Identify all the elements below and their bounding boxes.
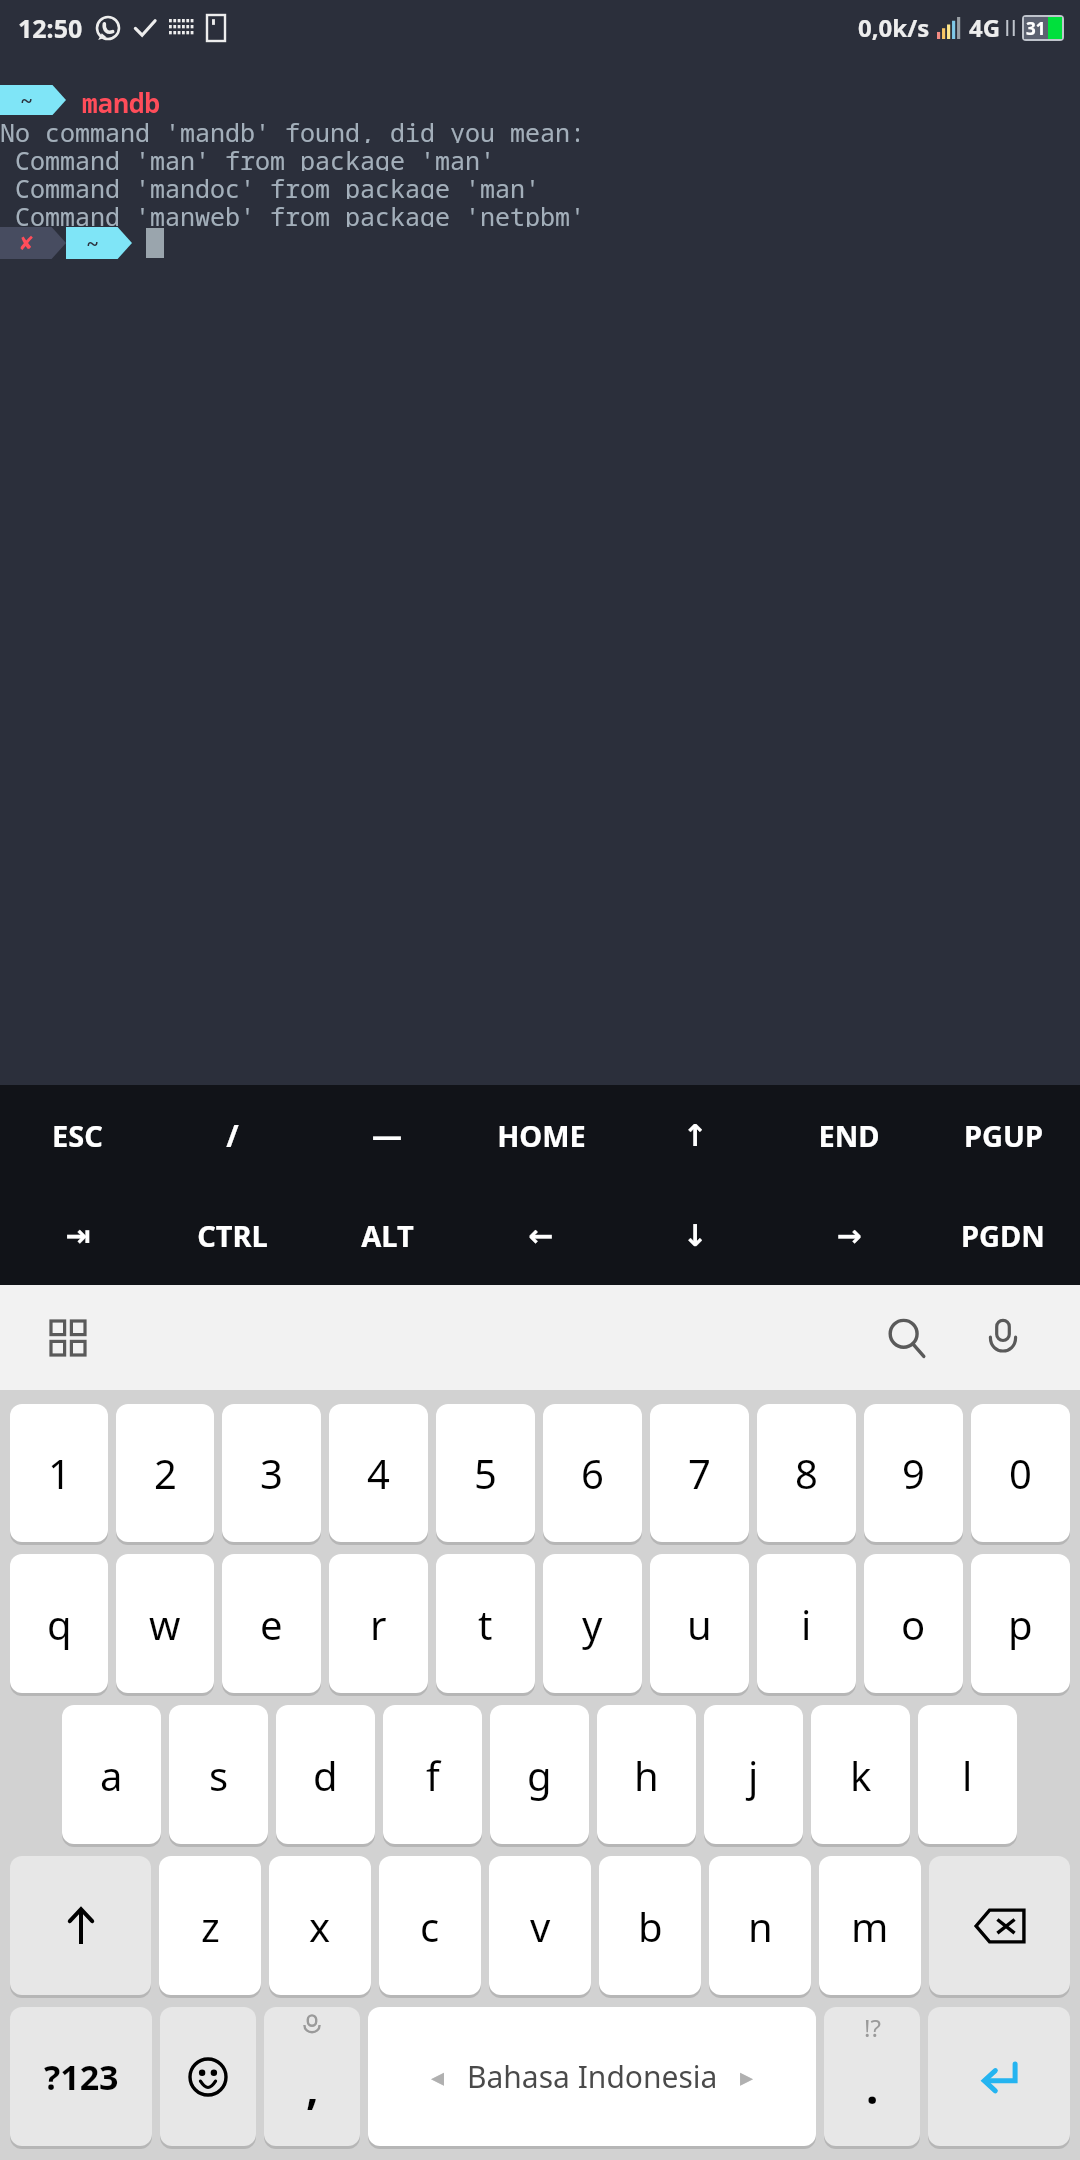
button[interactable]: Key → bbox=[772, 1185, 926, 1285]
button[interactable]: del bbox=[929, 1856, 1070, 1995]
button[interactable]: v bbox=[489, 1856, 591, 1995]
staticText: ~ bbox=[20, 85, 34, 115]
staticText: 2 bbox=[154, 1446, 177, 1500]
button[interactable]: Key ⇥ bbox=[0, 1185, 155, 1285]
button[interactable]: 3 bbox=[222, 1404, 321, 1542]
button[interactable]: 9 bbox=[864, 1404, 963, 1542]
button[interactable]: enter bbox=[928, 2007, 1070, 2146]
staticText: s bbox=[209, 1748, 229, 1802]
button[interactable]: j bbox=[704, 1705, 803, 1844]
staticText: a bbox=[100, 1748, 123, 1802]
staticText: 8 bbox=[795, 1446, 818, 1500]
button[interactable]: h bbox=[597, 1705, 696, 1844]
staticText: 7 bbox=[688, 1446, 711, 1500]
staticText: HOME bbox=[497, 1116, 586, 1155]
button[interactable]: HOME bbox=[464, 1085, 618, 1185]
button[interactable]: PGDN bbox=[926, 1185, 1080, 1285]
button[interactable]: o bbox=[864, 1554, 963, 1693]
staticText: 9 bbox=[902, 1446, 925, 1500]
staticText: h bbox=[634, 1748, 659, 1802]
button[interactable]: END bbox=[772, 1085, 926, 1185]
staticText: END bbox=[818, 1116, 880, 1155]
button[interactable]: ALT bbox=[310, 1185, 464, 1285]
staticText: ← bbox=[528, 1218, 554, 1253]
button[interactable]: PGUP bbox=[926, 1085, 1080, 1185]
button[interactable]: 6 bbox=[543, 1404, 642, 1542]
staticText: k bbox=[850, 1748, 872, 1802]
button[interactable]: l bbox=[918, 1705, 1017, 1844]
button[interactable]: emoji bbox=[160, 2007, 256, 2146]
button[interactable]: Key / bbox=[155, 1085, 310, 1185]
button[interactable]: m bbox=[819, 1856, 921, 1995]
button[interactable]: a bbox=[62, 1705, 161, 1844]
button[interactable]: Key ↓ bbox=[618, 1185, 772, 1285]
staticText: r bbox=[370, 1597, 387, 1651]
button[interactable]: q bbox=[10, 1554, 108, 1693]
button[interactable]: 1 bbox=[10, 1404, 108, 1542]
staticText: ✘ bbox=[20, 230, 34, 256]
button[interactable]: CTRL bbox=[155, 1185, 310, 1285]
button[interactable]: Key ↑ bbox=[618, 1085, 772, 1185]
button[interactable]: ?123 bbox=[10, 2007, 152, 2146]
button[interactable]: i bbox=[757, 1554, 856, 1693]
button[interactable]: g bbox=[490, 1705, 589, 1844]
staticText: e bbox=[260, 1597, 283, 1651]
button[interactable]: Search bbox=[872, 1303, 942, 1373]
button[interactable]: ◂ bbox=[368, 2007, 816, 2146]
staticText: ~ bbox=[86, 228, 100, 258]
staticText: i bbox=[801, 1597, 812, 1651]
button[interactable]: c bbox=[379, 1856, 481, 1995]
button[interactable]: p bbox=[971, 1554, 1070, 1693]
button[interactable]: period bbox=[824, 2007, 920, 2146]
button[interactable]: shift bbox=[10, 1856, 151, 1995]
button[interactable]: x bbox=[269, 1856, 371, 1995]
staticText: 6 bbox=[581, 1446, 604, 1500]
staticText: !? bbox=[864, 2011, 881, 2044]
staticText: 0 bbox=[1009, 1446, 1032, 1500]
staticText: No command 'mandb' found, did you mean: bbox=[0, 115, 586, 143]
button[interactable]: y bbox=[543, 1554, 642, 1693]
button[interactable]: s bbox=[169, 1705, 268, 1844]
button[interactable]: t bbox=[436, 1554, 535, 1693]
button[interactable]: f bbox=[383, 1705, 482, 1844]
staticText: → bbox=[836, 1218, 862, 1253]
button[interactable]: e bbox=[222, 1554, 321, 1693]
button[interactable]: Key ← bbox=[464, 1185, 618, 1285]
button[interactable]: 7 bbox=[650, 1404, 749, 1542]
button[interactable]: k bbox=[811, 1705, 910, 1844]
button[interactable]: r bbox=[329, 1554, 428, 1693]
button[interactable]: 2 bbox=[116, 1404, 214, 1542]
staticText: d bbox=[313, 1748, 338, 1802]
staticText: . bbox=[866, 2057, 879, 2117]
button[interactable]: n bbox=[709, 1856, 811, 1995]
staticText: Bahasa Indonesia bbox=[467, 2056, 718, 2097]
staticText: o bbox=[901, 1597, 926, 1651]
staticText: Command 'manweb' from package 'netpbm' bbox=[0, 199, 586, 227]
button[interactable]: 5 bbox=[436, 1404, 535, 1542]
button[interactable]: Clipboard bbox=[38, 1308, 98, 1368]
staticText: Command 'man' from package 'man' bbox=[0, 143, 496, 171]
staticText: 4 bbox=[367, 1446, 390, 1500]
staticText: PGUP bbox=[964, 1116, 1043, 1155]
staticText: Command 'mandoc' from package 'man' bbox=[0, 171, 541, 199]
button[interactable]: Voice input bbox=[968, 1303, 1038, 1373]
button[interactable]: u bbox=[650, 1554, 749, 1693]
button[interactable]: w bbox=[116, 1554, 214, 1693]
button[interactable]: ESC bbox=[0, 1085, 155, 1185]
staticText: , bbox=[306, 2057, 319, 2117]
staticText: c bbox=[420, 1899, 440, 1953]
staticText: x bbox=[309, 1899, 331, 1953]
staticText: m bbox=[851, 1899, 889, 1953]
staticText: 12:50 bbox=[18, 11, 83, 45]
staticText: PGDN bbox=[961, 1216, 1045, 1255]
button[interactable]: 4 bbox=[329, 1404, 428, 1542]
button[interactable]: comma bbox=[264, 2007, 360, 2146]
button[interactable]: b bbox=[599, 1856, 701, 1995]
button[interactable]: 8 bbox=[757, 1404, 856, 1542]
button[interactable]: 0 bbox=[971, 1404, 1070, 1542]
button[interactable]: d bbox=[276, 1705, 375, 1844]
staticText: z bbox=[201, 1899, 220, 1953]
button[interactable]: z bbox=[159, 1856, 261, 1995]
button[interactable]: Key — bbox=[310, 1085, 464, 1185]
staticText: ↓ bbox=[682, 1218, 708, 1253]
